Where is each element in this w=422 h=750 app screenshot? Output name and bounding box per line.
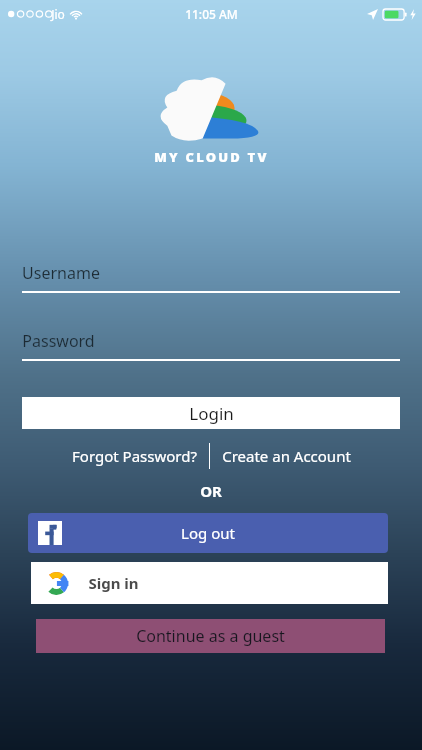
button[interactable]: Continue as a guest: [36, 619, 385, 653]
staticText: Password: [22, 330, 95, 352]
staticText: Sign in: [88, 573, 139, 593]
button[interactable]: Forgot Password?: [66, 443, 203, 469]
staticText: Forgot Password?: [72, 446, 197, 466]
staticText: MY CLOUD TV: [154, 148, 269, 166]
staticText: Jio: [51, 6, 65, 22]
button[interactable]: Password: [0, 330, 422, 361]
staticText: OR: [200, 481, 222, 501]
staticText: 11:05 AM: [185, 6, 238, 22]
staticText: Login: [189, 402, 234, 425]
staticText: Log out: [181, 523, 235, 543]
staticText: Username: [22, 262, 100, 284]
button[interactable]: Log out: [28, 513, 388, 553]
staticText: Continue as a guest: [136, 625, 285, 647]
button[interactable]: Login: [22, 397, 400, 429]
staticText: Create an Account: [222, 446, 351, 466]
button[interactable]: Username: [0, 262, 422, 293]
button[interactable]: Create an Account: [216, 443, 357, 469]
button[interactable]: Sign in: [31, 562, 388, 604]
